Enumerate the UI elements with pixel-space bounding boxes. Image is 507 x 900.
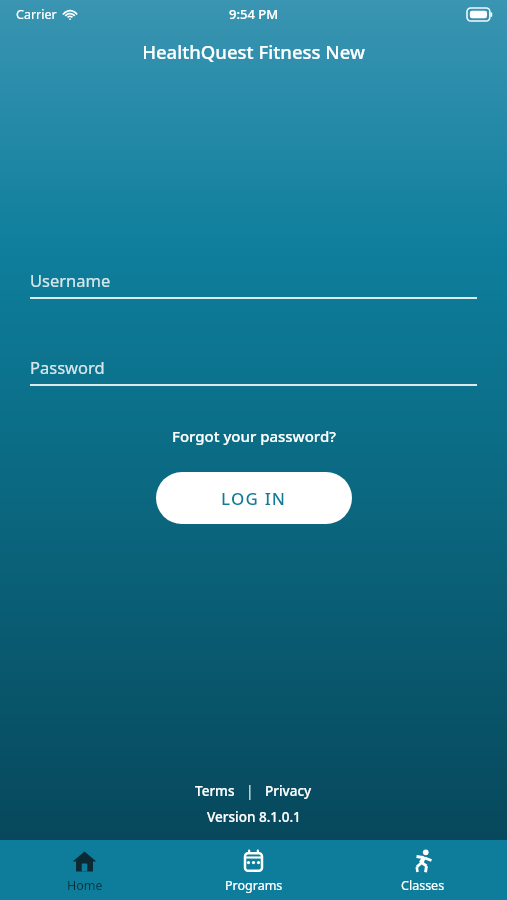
staticText: Home [67,877,103,894]
button[interactable]: Username [30,269,477,299]
button[interactable]: Programs [169,843,338,898]
staticText: Terms [195,782,235,800]
button[interactable]: Terms [191,780,239,802]
staticText: Privacy [265,782,312,800]
button[interactable]: Classes [338,843,507,898]
staticText: LOG IN [221,487,287,510]
staticText: Programs [225,877,283,894]
staticText: Forgot your password? [172,426,336,446]
staticText: HealthQuest Fitness New [142,39,365,64]
staticText: Password [30,356,105,378]
button[interactable]: Password [30,356,477,386]
button[interactable]: Privacy [261,780,316,802]
button[interactable]: Forgot your password? [162,422,346,450]
button[interactable]: LOG IN [156,472,352,524]
staticText: 9:54 PM [229,5,279,23]
staticText: Username [30,269,111,291]
staticText: Version 8.1.0.1 [207,808,301,826]
staticText: Classes [401,877,445,894]
staticText: Carrier [16,6,57,23]
staticText: | [246,782,254,800]
button[interactable]: Home [0,843,169,898]
